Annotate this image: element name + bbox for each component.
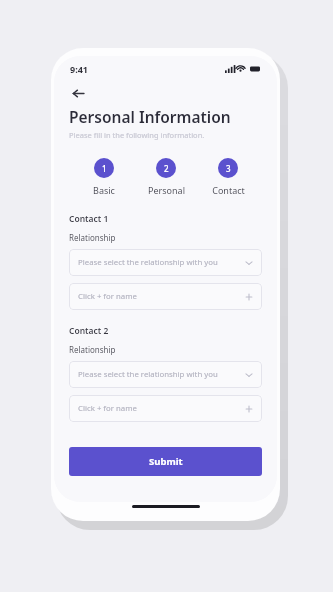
- staticText: Personal: [148, 184, 185, 196]
- staticText: Contact: [212, 184, 245, 196]
- button[interactable]: 2: [135, 158, 197, 196]
- staticText: Please fill in the following information…: [69, 130, 205, 140]
- button[interactable]: Submit: [69, 447, 262, 476]
- staticText: 2: [164, 163, 169, 174]
- button[interactable]: Click + for name: [69, 395, 262, 422]
- staticText: Please select the relationship with you: [78, 257, 218, 268]
- staticText: Personal Information: [69, 106, 231, 127]
- button[interactable]: Back: [68, 83, 88, 103]
- staticText: 9:41: [70, 63, 88, 75]
- staticText: Relationship: [69, 344, 116, 355]
- button[interactable]: Please select the relationship with you: [69, 361, 262, 388]
- button[interactable]: Please select the relationship with you: [69, 249, 262, 276]
- staticText: Basic: [93, 184, 115, 196]
- staticText: Click + for name: [78, 403, 137, 414]
- staticText: Relationship: [69, 232, 116, 243]
- staticText: 3: [226, 163, 231, 174]
- staticText: Contact 2: [69, 325, 109, 337]
- staticText: Click + for name: [78, 291, 137, 302]
- staticText: 1: [102, 163, 107, 174]
- button[interactable]: Click + for name: [69, 283, 262, 310]
- button[interactable]: 3: [197, 158, 259, 196]
- staticText: Please select the relationship with you: [78, 369, 218, 380]
- staticText: Contact 1: [69, 213, 109, 225]
- button[interactable]: 1: [72, 158, 135, 196]
- staticText: Submit: [149, 455, 183, 468]
